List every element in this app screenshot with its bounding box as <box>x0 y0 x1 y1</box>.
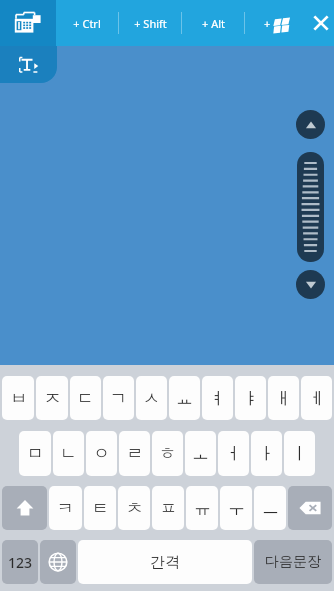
staticText: ㅕ <box>209 388 226 409</box>
button[interactable]: ㅣ <box>284 431 315 476</box>
button[interactable]: ㅛ <box>169 376 200 420</box>
staticText: ㅛ <box>176 388 193 409</box>
button[interactable]: 다음문장 <box>254 540 332 584</box>
staticText: ㅡ <box>262 498 279 519</box>
button[interactable]: ㅑ <box>235 376 266 420</box>
button[interactable]: ㅊ <box>118 486 150 530</box>
staticText: ㅣ <box>291 443 308 464</box>
button[interactable]: ㅗ <box>185 431 216 476</box>
staticText: ㅅ <box>143 388 160 409</box>
staticText: ㅁ <box>27 443 44 464</box>
staticText: ㅔ <box>308 388 325 409</box>
button[interactable]: 간격 <box>78 540 252 584</box>
button[interactable]: Scroll up <box>296 110 325 139</box>
button[interactable]: Keyboard mode <box>0 0 56 46</box>
staticText: ㄹ <box>126 443 143 464</box>
staticText: ㅓ <box>225 443 242 464</box>
staticText: ㅜ <box>228 498 245 519</box>
staticText: + Ctrl <box>73 16 101 31</box>
button[interactable]: ㅠ <box>186 486 218 530</box>
staticText: ㅏ <box>258 443 275 464</box>
button[interactable]: ㅓ <box>218 431 249 476</box>
button[interactable]: ㅍ <box>152 486 184 530</box>
button[interactable]: Scroll down <box>296 270 325 299</box>
button[interactable]: + Shift <box>119 0 181 46</box>
button[interactable]: Backspace <box>288 486 332 530</box>
button[interactable]: Windows key <box>245 0 307 46</box>
button[interactable]: Shift <box>2 486 47 530</box>
button[interactable]: ㄷ <box>70 376 101 420</box>
button[interactable]: ㅐ <box>268 376 299 420</box>
button[interactable]: Text input mode <box>0 46 57 83</box>
staticText: ㅎ <box>159 443 176 464</box>
staticText: ㅋ <box>57 498 74 519</box>
staticText: ㅇ <box>93 443 110 464</box>
button[interactable]: ㅌ <box>84 486 116 530</box>
button[interactable]: + Ctrl <box>56 0 118 46</box>
button[interactable]: ㅔ <box>301 376 332 420</box>
button[interactable]: ㅈ <box>36 376 68 420</box>
staticText: ㅑ <box>242 388 259 409</box>
button[interactable]: Close <box>307 0 334 46</box>
staticText: ㅂ <box>10 388 27 409</box>
staticText: ㄷ <box>77 388 94 409</box>
staticText: ㄱ <box>110 388 127 409</box>
staticText: 간격 <box>150 553 180 572</box>
button[interactable]: ㅁ <box>19 431 51 476</box>
button[interactable]: ㅎ <box>152 431 183 476</box>
staticText: ㅍ <box>160 498 177 519</box>
button[interactable]: ㅅ <box>136 376 167 420</box>
button[interactable]: Change language <box>40 540 76 584</box>
button[interactable]: ㅜ <box>220 486 252 530</box>
button[interactable]: ㅇ <box>86 431 117 476</box>
staticText: ㅗ <box>192 443 209 464</box>
button[interactable]: ㅡ <box>254 486 286 530</box>
button[interactable]: 123 <box>2 540 38 584</box>
button[interactable]: ㄱ <box>103 376 134 420</box>
staticText: + Alt <box>202 16 225 31</box>
button[interactable]: ㅋ <box>49 486 82 530</box>
button[interactable]: ㄴ <box>53 431 84 476</box>
staticText: ㅈ <box>44 388 61 409</box>
staticText: + <box>264 16 271 31</box>
button[interactable]: ㅏ <box>251 431 282 476</box>
button[interactable]: ㅂ <box>2 376 34 420</box>
button[interactable]: ㅕ <box>202 376 233 420</box>
staticText: ㄴ <box>60 443 77 464</box>
button[interactable]: + Alt <box>182 0 244 46</box>
staticText: ㅐ <box>275 388 292 409</box>
button[interactable]: ㄹ <box>119 431 150 476</box>
staticText: ㅊ <box>126 498 143 519</box>
staticText: ㅌ <box>92 498 109 519</box>
staticText: 123 <box>8 553 33 572</box>
staticText: 다음문장 <box>265 553 321 571</box>
staticText: + Shift <box>134 16 167 31</box>
button[interactable]: Scroll thumb <box>297 152 324 262</box>
staticText: ㅠ <box>194 498 211 519</box>
